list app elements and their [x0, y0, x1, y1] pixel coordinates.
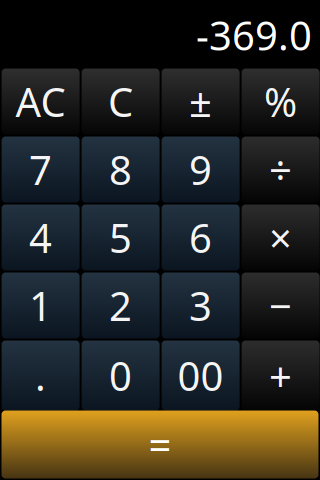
button[interactable]: ×: [242, 204, 320, 270]
button[interactable]: .: [2, 340, 80, 410]
button[interactable]: 7: [2, 136, 80, 202]
button[interactable]: +: [242, 340, 320, 410]
button[interactable]: 00: [162, 340, 240, 410]
staticText: 8: [109, 143, 132, 196]
staticText: 9: [189, 143, 212, 196]
staticText: 1: [29, 279, 52, 332]
staticText: %: [264, 75, 297, 128]
button[interactable]: =: [1, 410, 318, 478]
button[interactable]: 0: [82, 340, 160, 410]
staticText: 00: [178, 349, 224, 402]
staticText: ÷: [269, 143, 292, 196]
button[interactable]: −: [242, 272, 320, 338]
button[interactable]: 1: [2, 272, 80, 338]
staticText: 4: [29, 211, 52, 264]
button[interactable]: 4: [2, 204, 80, 270]
button[interactable]: %: [242, 68, 320, 134]
staticText: 2: [109, 279, 132, 332]
staticText: 0: [109, 349, 132, 402]
staticText: +: [269, 349, 292, 402]
staticText: 6: [189, 211, 212, 264]
button[interactable]: 8: [82, 136, 160, 202]
staticText: ×: [269, 211, 292, 264]
staticText: 7: [29, 143, 52, 196]
staticText: =: [148, 418, 171, 471]
button[interactable]: ±: [162, 68, 240, 134]
staticText: -369.0: [196, 8, 312, 61]
staticText: .: [35, 349, 46, 402]
button[interactable]: 9: [162, 136, 240, 202]
staticText: C: [108, 75, 133, 128]
button[interactable]: 2: [82, 272, 160, 338]
staticText: AC: [16, 75, 66, 128]
button[interactable]: 5: [82, 204, 160, 270]
button[interactable]: C: [82, 68, 160, 134]
button[interactable]: AC: [2, 68, 80, 134]
button[interactable]: ÷: [242, 136, 320, 202]
button[interactable]: 3: [162, 272, 240, 338]
staticText: 5: [109, 211, 132, 264]
staticText: −: [269, 279, 292, 332]
staticText: 3: [189, 279, 212, 332]
button[interactable]: 6: [162, 204, 240, 270]
staticText: ±: [189, 75, 212, 128]
